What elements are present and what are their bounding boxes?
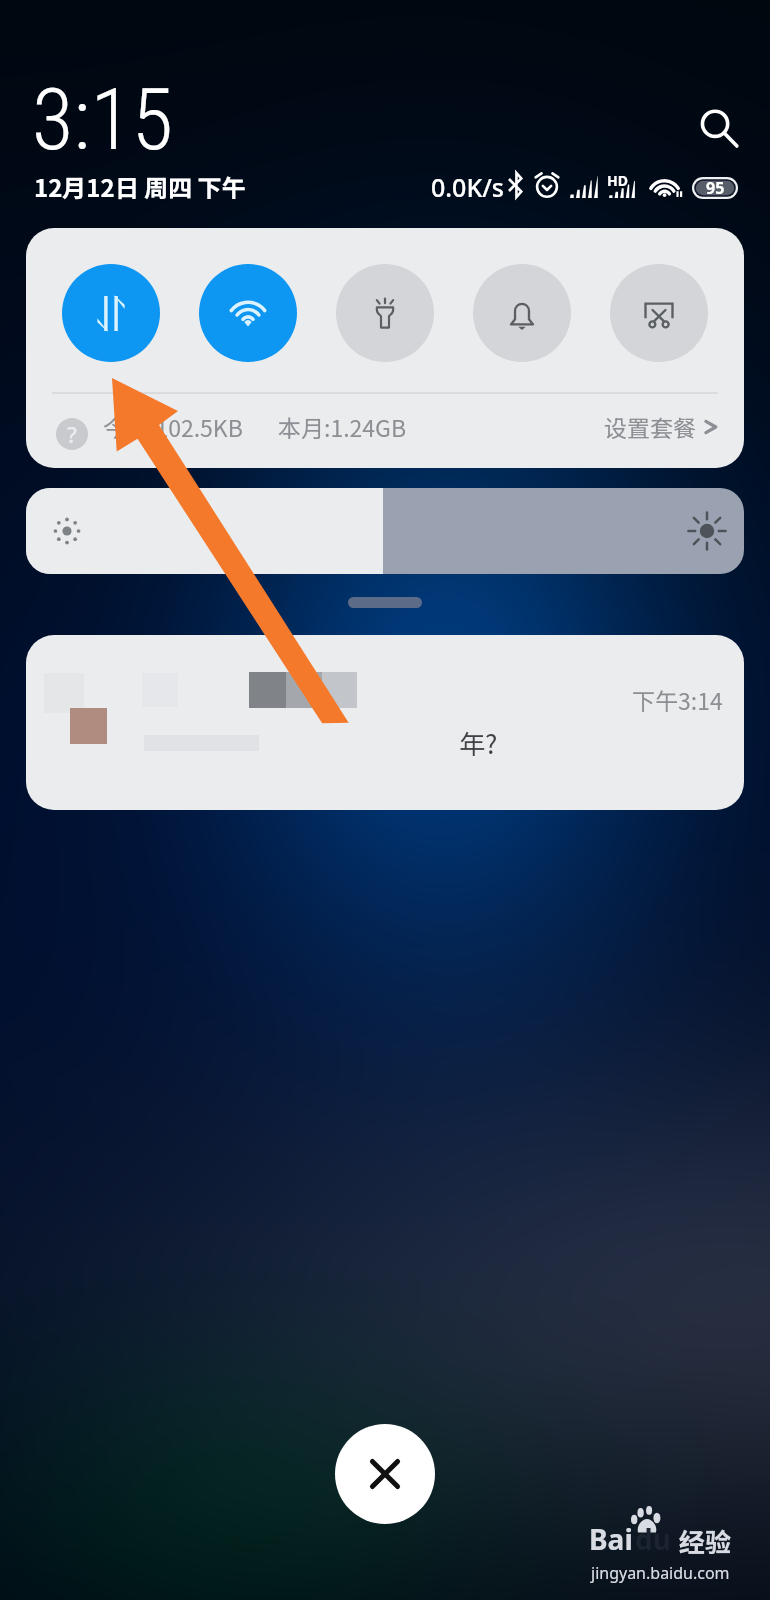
staticText: HD <box>607 171 628 190</box>
button[interactable]: Search <box>682 92 754 164</box>
staticText: 95 <box>706 177 725 199</box>
staticText: Bai <box>589 1520 633 1558</box>
staticText: du <box>635 1520 671 1558</box>
staticText: 下午3:14 <box>632 683 723 716</box>
button[interactable]: Screenshot <box>610 264 708 362</box>
button[interactable]: 年? <box>26 635 744 810</box>
button[interactable]: Close <box>335 1424 435 1524</box>
staticText: ? <box>67 419 77 449</box>
staticText: jingyan.baidu.com <box>591 1562 730 1584</box>
staticText: 0.0K/s <box>431 170 504 204</box>
button[interactable]: Help <box>56 418 88 450</box>
staticText: 今日:102.5KB <box>103 410 243 443</box>
button[interactable]: Brightness <box>26 488 744 574</box>
button[interactable]: 设置套餐 <box>604 410 719 443</box>
staticText: 年? <box>459 724 498 762</box>
button[interactable]: Flashlight <box>336 264 434 362</box>
button[interactable]: Do not disturb <box>473 264 571 362</box>
button[interactable]: Mobile data <box>62 264 160 362</box>
button[interactable]: Wi-Fi <box>199 264 297 362</box>
staticText: 3:15 <box>32 70 173 170</box>
staticText: 经验 <box>679 1522 732 1560</box>
staticText: 本月:1.24GB <box>278 410 407 443</box>
staticText: 设置套餐 <box>604 410 696 443</box>
staticText: 12月12日 周四 下午 <box>34 169 246 204</box>
